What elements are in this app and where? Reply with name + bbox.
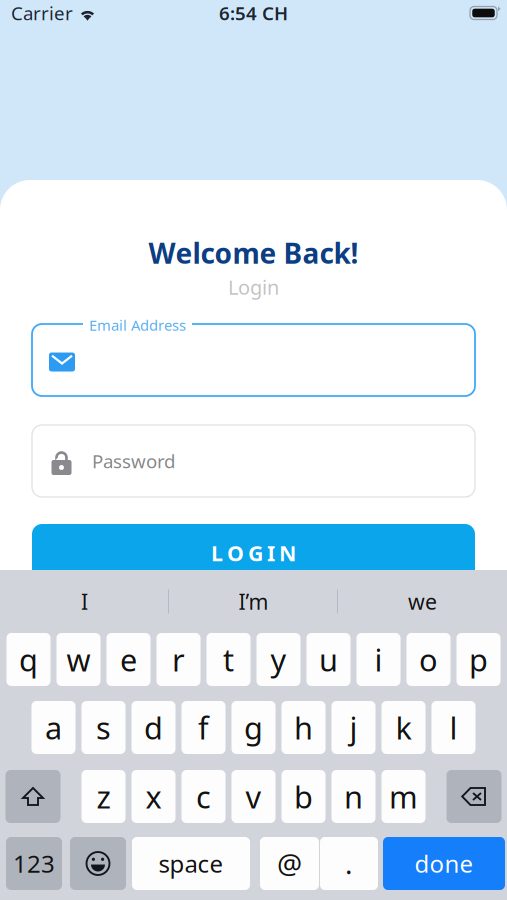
staticText: d — [144, 707, 163, 748]
staticText: m — [389, 776, 418, 817]
staticText: e — [120, 639, 137, 680]
staticText: h — [294, 707, 313, 748]
staticText: Carrier — [11, 1, 73, 25]
button[interactable]: we — [338, 581, 507, 621]
button[interactable]: r — [156, 633, 200, 686]
staticText: I’m — [238, 587, 268, 616]
button[interactable]: d — [131, 701, 175, 754]
button[interactable]: space — [132, 837, 250, 890]
staticText: b — [294, 776, 313, 817]
staticText: Email Address — [89, 315, 186, 335]
staticText: . — [345, 845, 353, 882]
staticText: v — [245, 776, 261, 817]
staticText: x — [145, 776, 161, 817]
staticText: o — [419, 639, 438, 680]
staticText: w — [66, 639, 90, 680]
button[interactable]: k — [381, 701, 425, 754]
staticText: I — [81, 587, 88, 616]
staticText: done — [414, 848, 473, 879]
button[interactable]: e — [106, 633, 150, 686]
staticText: 123 — [13, 848, 55, 879]
staticText: t — [223, 639, 234, 680]
button[interactable]: j — [331, 701, 375, 754]
button[interactable]: z — [81, 770, 125, 823]
staticText: 6:54 CH — [219, 1, 288, 25]
button[interactable]: p — [456, 633, 500, 686]
staticText: y — [270, 639, 286, 680]
staticText: p — [469, 639, 488, 680]
button[interactable]: h — [281, 701, 325, 754]
staticText: Welcome Back! — [148, 234, 358, 272]
staticText: g — [244, 707, 263, 748]
staticText: space — [158, 848, 223, 879]
button[interactable]: g — [231, 701, 275, 754]
staticText: k — [395, 707, 411, 748]
button[interactable]: a — [31, 701, 75, 754]
staticText: u — [319, 639, 338, 680]
button[interactable]: I’m — [169, 581, 338, 621]
button[interactable]: 123 — [6, 837, 62, 890]
staticText: @ — [277, 845, 302, 882]
button[interactable]: @ — [260, 837, 319, 890]
button[interactable]: Shift — [5, 770, 60, 823]
button[interactable]: m — [381, 770, 425, 823]
button[interactable]: u — [306, 633, 350, 686]
button[interactable]: v — [231, 770, 275, 823]
staticText: l — [449, 707, 457, 748]
button[interactable]: I — [0, 581, 169, 621]
button[interactable]: t — [206, 633, 250, 686]
staticText: i — [374, 639, 382, 680]
staticText: q — [19, 639, 38, 680]
staticText: n — [344, 776, 363, 817]
button[interactable]: i — [356, 633, 400, 686]
button[interactable]: Emoji — [70, 837, 126, 890]
button[interactable]: b — [281, 770, 325, 823]
staticText: Login — [228, 274, 279, 300]
button[interactable]: n — [331, 770, 375, 823]
button[interactable]: L O G I N — [32, 524, 475, 582]
staticText: z — [96, 776, 110, 817]
staticText: a — [45, 707, 62, 748]
staticText: c — [196, 776, 211, 817]
button[interactable]: x — [131, 770, 175, 823]
button[interactable]: Backspace — [446, 770, 501, 823]
button[interactable]: y — [256, 633, 300, 686]
button[interactable]: q — [6, 633, 50, 686]
button[interactable]: s — [81, 701, 125, 754]
staticText: j — [349, 707, 357, 748]
button[interactable]: done — [383, 837, 505, 890]
button[interactable]: l — [431, 701, 475, 754]
staticText: f — [198, 707, 209, 748]
staticText: Password — [92, 449, 175, 473]
staticText: s — [96, 707, 111, 748]
staticText: r — [172, 639, 185, 680]
button[interactable]: f — [181, 701, 225, 754]
staticText: we — [408, 587, 437, 616]
staticText: L O G I N — [211, 539, 296, 567]
button[interactable]: o — [406, 633, 450, 686]
button[interactable]: . — [320, 837, 378, 890]
button[interactable]: c — [181, 770, 225, 823]
button[interactable]: w — [56, 633, 100, 686]
